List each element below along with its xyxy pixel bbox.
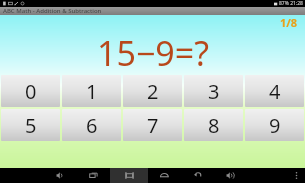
- button[interactable]: Back: [181, 168, 214, 183]
- button[interactable]: Recent apps: [77, 168, 110, 183]
- staticText: 5: [25, 112, 37, 139]
- button[interactable]: Volume down: [44, 168, 77, 183]
- button[interactable]: Home: [148, 168, 181, 183]
- staticText: 7: [147, 112, 159, 139]
- button[interactable]: 3: [184, 75, 243, 107]
- button[interactable]: 0: [1, 75, 60, 107]
- button[interactable]: 1: [62, 75, 121, 107]
- staticText: 87% 21:28: [279, 0, 303, 7]
- button[interactable]: Volume up: [214, 168, 247, 183]
- button[interactable]: 2: [123, 75, 182, 107]
- staticText: 2: [147, 78, 159, 105]
- staticText: 15−9=?: [97, 30, 209, 75]
- staticText: 0: [25, 78, 37, 105]
- staticText: ABC Math - Addition & Subtraction: [3, 7, 102, 15]
- staticText: 4: [269, 78, 281, 105]
- staticText: 6: [86, 112, 98, 139]
- staticText: 9: [269, 112, 281, 139]
- staticText: 1: [86, 78, 98, 105]
- button[interactable]: 8: [184, 109, 243, 141]
- button[interactable]: 9: [245, 109, 304, 141]
- staticText: 8: [208, 112, 220, 139]
- button[interactable]: More options: [287, 168, 305, 183]
- button[interactable]: Fullscreen: [110, 168, 148, 183]
- button[interactable]: 7: [123, 109, 182, 141]
- staticText: 3: [208, 78, 220, 105]
- staticText: 1/8: [280, 15, 298, 30]
- button[interactable]: 5: [1, 109, 60, 141]
- button[interactable]: 4: [245, 75, 304, 107]
- button[interactable]: 6: [62, 109, 121, 141]
